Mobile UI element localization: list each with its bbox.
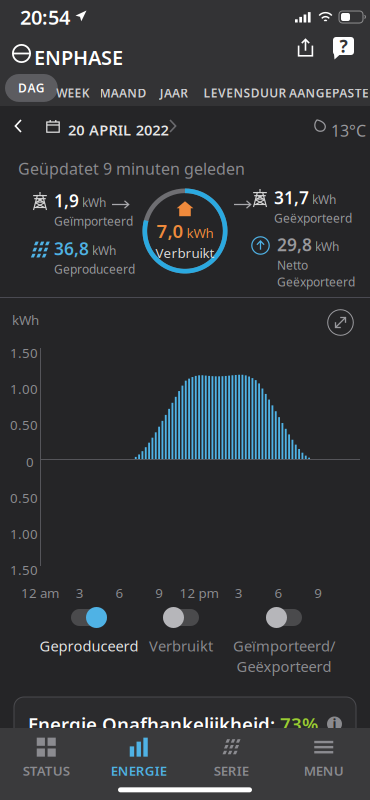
staticText: ENPHASE <box>34 44 123 71</box>
staticText: 13°C <box>331 120 366 141</box>
staticText: Geëxporteerd <box>277 274 355 290</box>
staticText: SERIE <box>214 762 249 779</box>
button[interactable]: LEVENSDUUR <box>196 80 294 106</box>
button[interactable]: Next day <box>168 119 177 133</box>
staticText: 31,7 <box>274 186 309 209</box>
button[interactable]: JAAR <box>152 80 196 106</box>
staticText: ? <box>339 34 347 57</box>
button[interactable]: SERIE <box>185 728 277 787</box>
staticText: 73% <box>280 712 318 736</box>
staticText: Energie Onafhankelijkheid: <box>28 712 280 736</box>
staticText: ENERGIE <box>111 762 167 779</box>
staticText: 1.50 <box>10 561 38 579</box>
staticText: 9 <box>314 584 322 602</box>
staticText: 0 <box>26 453 34 471</box>
button[interactable]: Previous day <box>14 119 23 133</box>
staticText: Verbruikt <box>149 636 213 655</box>
staticText: 20:54 <box>20 4 70 30</box>
staticText: kWh <box>82 195 106 210</box>
staticText: 0.50 <box>10 489 38 507</box>
staticText: Geüpdatet 9 minuten geleden <box>18 158 245 179</box>
button[interactable]: MENU <box>277 728 370 787</box>
button[interactable]: Verbruikt <box>149 607 213 655</box>
staticText: Netto <box>277 257 308 273</box>
staticText: 6 <box>274 584 282 602</box>
button[interactable]: Geïmporteerd/ <box>233 607 335 676</box>
button[interactable]: MAAND <box>92 80 154 106</box>
staticText: DAG <box>18 80 45 96</box>
staticText: kWh <box>315 239 339 254</box>
staticText: JAAR <box>160 85 188 101</box>
button[interactable]: WEEK <box>48 80 98 106</box>
button[interactable]: Expand chart <box>327 309 354 336</box>
staticText: Geëxporteerd <box>274 210 352 226</box>
staticText: 3 <box>235 584 243 602</box>
staticText: 9 <box>155 584 163 602</box>
staticText: Geïmporteerd/ <box>233 636 335 655</box>
staticText: Geproduceerd <box>54 261 135 277</box>
staticText: Geïmporteerd <box>54 213 133 229</box>
button[interactable]: STATUS <box>0 728 92 787</box>
staticText: 0.50 <box>10 416 38 434</box>
staticText: 29,8 <box>277 233 312 256</box>
staticText: MENU <box>304 762 344 779</box>
staticText: 6 <box>115 584 123 602</box>
button[interactable]: AANGEPASTE <box>281 80 370 106</box>
staticText: kWh <box>12 311 39 329</box>
staticText: WEEK <box>56 85 90 101</box>
staticText: 36,8 <box>54 237 89 260</box>
staticText: STATUS <box>23 762 70 779</box>
staticText: kWh <box>92 243 116 258</box>
staticText: Verbruikt <box>155 244 214 262</box>
staticText: kWh <box>186 224 213 242</box>
staticText: AANGEPASTE <box>289 85 369 101</box>
button[interactable]: Share <box>296 38 315 57</box>
staticText: kWh <box>312 192 336 207</box>
staticText: LEVENSDUUR <box>204 85 286 101</box>
button[interactable]: DAG <box>5 74 58 102</box>
staticText: 1,9 <box>54 189 79 212</box>
staticText: 1.00 <box>10 525 38 543</box>
staticText: 7,0 <box>156 218 183 243</box>
staticText: Geproduceerd <box>39 636 138 655</box>
staticText: 12 am <box>21 584 59 602</box>
button[interactable]: Geproduceerd <box>39 607 138 655</box>
staticText: i <box>332 715 336 733</box>
staticText: 20 APRIL 2022 <box>68 120 169 139</box>
staticText: Geëxporteerd <box>236 656 331 676</box>
staticText: MAAND <box>100 85 146 101</box>
staticText: 1.50 <box>10 344 38 362</box>
staticText: 3 <box>76 584 84 602</box>
button[interactable]: ENERGIE <box>92 728 185 787</box>
staticText: 12 pm <box>179 584 218 602</box>
button[interactable]: Energie Onafhankelijkheid: <box>14 697 356 751</box>
staticText: 1.00 <box>10 380 38 398</box>
button[interactable]: Help <box>333 37 354 60</box>
